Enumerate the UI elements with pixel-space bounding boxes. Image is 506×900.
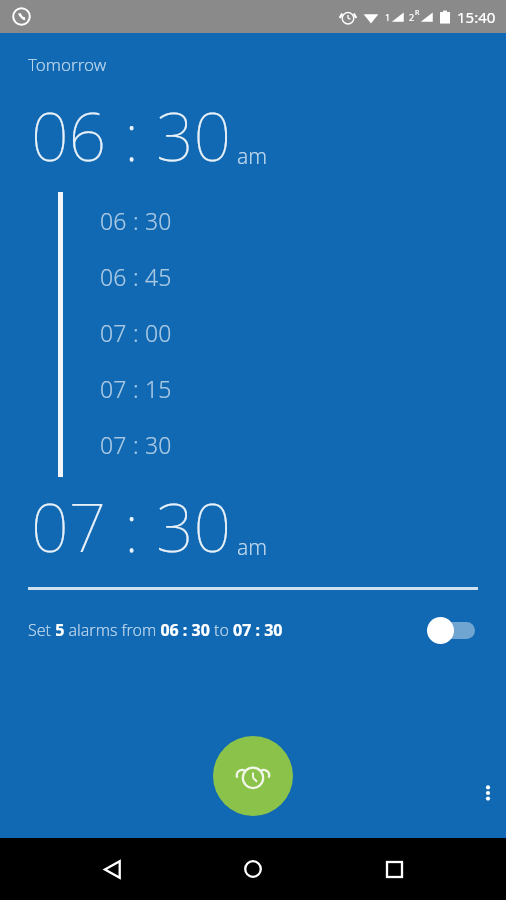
staticText: : (107, 481, 156, 571)
staticText: 30 (145, 429, 172, 460)
button[interactable]: Recent apps (370, 845, 418, 893)
staticText: Tomorrow (28, 53, 107, 76)
staticText: 15:40 (457, 7, 496, 27)
staticText: R (415, 8, 420, 18)
staticText: : (127, 205, 145, 236)
button[interactable]: 07 (31, 481, 268, 571)
staticText: 06 (100, 205, 127, 236)
button[interactable]: Set 5 alarms from 06 : 30 to 07 : 30 (0, 608, 506, 652)
button[interactable]: More options (470, 775, 506, 811)
button[interactable]: Back (88, 845, 136, 893)
button[interactable]: Toggle alarms (426, 613, 484, 647)
staticText: : (127, 373, 145, 404)
button[interactable]: Set alarms (213, 736, 293, 816)
staticText: 07 (31, 481, 107, 571)
staticText: 30 (156, 481, 232, 571)
staticText: 00 (145, 317, 172, 348)
button[interactable]: Home (229, 845, 277, 893)
staticText: Set 5 alarms from 06 : 30 to 07 : 30 (28, 619, 283, 641)
staticText: 07 (100, 373, 127, 404)
button[interactable]: 06 (0, 248, 506, 304)
staticText: 15 (145, 373, 172, 404)
button[interactable]: 07 (0, 360, 506, 416)
staticText: 30 (156, 90, 232, 180)
button[interactable]: 06 (31, 90, 268, 180)
staticText: am (237, 533, 268, 562)
button[interactable]: 06 (0, 192, 506, 248)
staticText: 45 (145, 261, 172, 292)
staticText: : (127, 317, 145, 348)
staticText: 07 (100, 317, 127, 348)
button[interactable]: 07 (0, 416, 506, 472)
button[interactable]: 07 (0, 304, 506, 360)
staticText: 1 (385, 11, 391, 23)
staticText: : (127, 429, 145, 460)
staticText: 30 (145, 205, 172, 236)
staticText: am (237, 142, 268, 171)
staticText: 06 (31, 90, 107, 180)
staticText: : (127, 261, 145, 292)
staticText: 06 (100, 261, 127, 292)
staticText: : (107, 90, 156, 180)
staticText: 07 (100, 429, 127, 460)
staticText: 2 (409, 11, 415, 23)
